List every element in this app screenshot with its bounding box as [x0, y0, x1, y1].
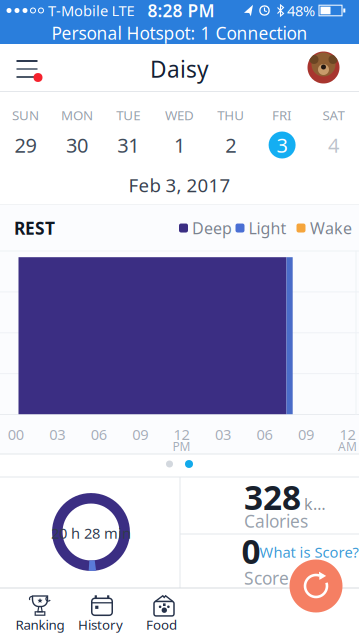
staticText: WED [165, 106, 194, 124]
button[interactable]: SUN [0, 92, 51, 165]
staticText: 12 [339, 425, 355, 444]
staticText: T-Mobile [48, 1, 108, 20]
staticText: PM [173, 438, 191, 454]
staticText: Score [244, 566, 289, 589]
staticText: REST [14, 216, 55, 239]
button[interactable]: Sync [289, 559, 342, 612]
staticText: 2 [225, 132, 236, 158]
button[interactable]: TUE [103, 92, 154, 165]
staticText: Calories [244, 509, 308, 532]
staticText: 4 [328, 132, 339, 158]
staticText: Daisy [150, 54, 209, 84]
staticText: 0 [241, 529, 260, 573]
button[interactable]: THU [205, 92, 256, 165]
button[interactable]: Ranking [9, 588, 71, 638]
staticText: 06 [257, 425, 273, 444]
staticText: 31 [117, 132, 139, 158]
staticText: 3 [277, 132, 288, 158]
staticText: What is Score? [259, 542, 358, 562]
staticText: 03 [215, 425, 231, 444]
staticText: 03 [49, 425, 65, 444]
button[interactable]: FRI [257, 92, 308, 165]
staticText: 00 [8, 425, 24, 444]
staticText: AM [338, 438, 357, 454]
staticText: 09 [298, 425, 314, 444]
staticText: 06 [91, 425, 107, 444]
staticText: SUN [12, 106, 39, 124]
staticText: FRI [272, 106, 292, 124]
staticText: 30 [66, 132, 88, 158]
staticText: 29 [15, 132, 37, 158]
button[interactable]: History [69, 588, 131, 638]
button[interactable]: Menu [5, 46, 49, 90]
staticText: LTE [111, 1, 134, 20]
button[interactable]: Profile [307, 51, 339, 83]
staticText: 48% [287, 1, 315, 20]
staticText: MON [61, 106, 93, 124]
staticText: 328 [244, 475, 301, 519]
button[interactable]: Food [130, 588, 192, 638]
staticText: 8:28 PM [147, 0, 214, 22]
button[interactable]: MON [51, 92, 102, 165]
staticText: 09 [132, 425, 148, 444]
staticText: Wake [310, 217, 352, 239]
staticText: Feb 3, 2017 [128, 173, 230, 197]
button[interactable]: WED [154, 92, 205, 165]
staticText: History [78, 616, 123, 633]
staticText: TUE [116, 106, 140, 124]
staticText: 1 [174, 132, 185, 158]
staticText: Ranking [15, 616, 64, 633]
staticText: Personal Hotspot: 1 Connection [51, 21, 307, 44]
staticText: Deep [192, 217, 232, 239]
staticText: SAT [322, 106, 344, 124]
button[interactable]: What is Score? [259, 542, 358, 562]
staticText: Food [146, 616, 177, 633]
staticText: 12 [174, 425, 190, 444]
staticText: 20 h 28 min [51, 523, 131, 543]
staticText: k… [304, 493, 326, 514]
button[interactable]: SAT [308, 92, 359, 165]
staticText: Light [248, 217, 286, 239]
staticText: THU [217, 106, 244, 124]
